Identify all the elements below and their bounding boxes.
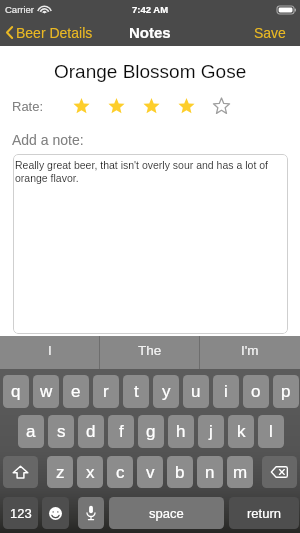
staticText: s [57,422,66,441]
staticText: d [86,422,96,441]
staticText: j [209,422,213,441]
button[interactable]: d [78,415,104,448]
staticText: g [146,422,156,441]
staticText: n [205,463,215,482]
button[interactable]: Rate 3 stars [143,98,160,114]
button[interactable]: space [109,497,224,529]
staticText: Add a note: [12,132,84,148]
staticText: m [233,463,248,482]
button[interactable]: Rate 4 stars [178,98,195,114]
button[interactable]: Shift [3,456,38,488]
button[interactable]: e [63,375,89,408]
button[interactable]: x [77,456,103,488]
staticText: Really great beer, that isn't overly sou… [15,159,285,184]
staticText: y [162,382,171,401]
staticText: e [71,382,81,401]
button[interactable]: k [228,415,254,448]
button[interactable]: I [0,336,100,369]
staticText: o [251,382,261,401]
staticText: i [224,382,228,401]
button[interactable]: Really great beer, that isn't overly sou… [13,154,288,334]
button[interactable]: Emoji [42,497,69,529]
staticText: x [86,463,95,482]
staticText: 7:42 AM [132,4,169,15]
staticText: t [134,382,139,401]
staticText: k [237,422,246,441]
button[interactable]: y [153,375,179,408]
button[interactable]: f [108,415,134,448]
staticText: q [11,382,21,401]
staticText: c [116,463,125,482]
button[interactable]: I'm [200,336,300,369]
staticText: I [48,343,52,358]
button[interactable]: n [197,456,223,488]
button[interactable]: Backspace [262,456,297,488]
button[interactable]: p [273,375,299,408]
staticText: w [40,382,53,401]
button[interactable]: 123 [3,497,38,529]
staticText: return [247,506,281,521]
staticText: Notes [129,24,171,41]
staticText: f [119,422,124,441]
button[interactable]: a [18,415,44,448]
button[interactable]: Dictation [78,497,104,529]
button[interactable]: return [229,497,299,529]
staticText: Beer Details [16,25,93,41]
staticText: 123 [10,506,32,521]
button[interactable]: z [47,456,73,488]
button[interactable]: b [167,456,193,488]
staticText: Rate: [12,99,44,114]
button[interactable]: Beer Details [0,19,99,46]
staticText: p [281,382,291,401]
button[interactable]: o [243,375,269,408]
button[interactable]: c [107,456,133,488]
staticText: v [146,463,155,482]
button[interactable]: i [213,375,239,408]
staticText: Orange Blossom Gose [54,61,247,82]
staticText: l [269,422,273,441]
button[interactable]: Save [246,19,300,46]
staticText: Save [254,25,286,41]
staticText: b [175,463,185,482]
button[interactable]: w [33,375,59,408]
button[interactable]: The [100,336,200,369]
staticText: I'm [241,343,259,358]
button[interactable]: m [227,456,253,488]
button[interactable]: r [93,375,119,408]
button[interactable]: l [258,415,284,448]
button[interactable]: Rate 1 stars [73,98,90,114]
staticText: The [138,343,162,358]
button[interactable]: t [123,375,149,408]
button[interactable]: j [198,415,224,448]
button[interactable]: q [3,375,29,408]
button[interactable]: Rate 5 stars [213,98,230,114]
staticText: Carrier [5,4,35,15]
staticText: space [149,506,184,521]
staticText: h [176,422,186,441]
button[interactable]: s [48,415,74,448]
staticText: u [191,382,201,401]
button[interactable]: u [183,375,209,408]
staticText: r [103,382,109,401]
staticText: z [56,463,65,482]
button[interactable]: Rate 2 stars [108,98,125,114]
button[interactable]: h [168,415,194,448]
button[interactable]: v [137,456,163,488]
button[interactable]: g [138,415,164,448]
staticText: a [26,422,36,441]
